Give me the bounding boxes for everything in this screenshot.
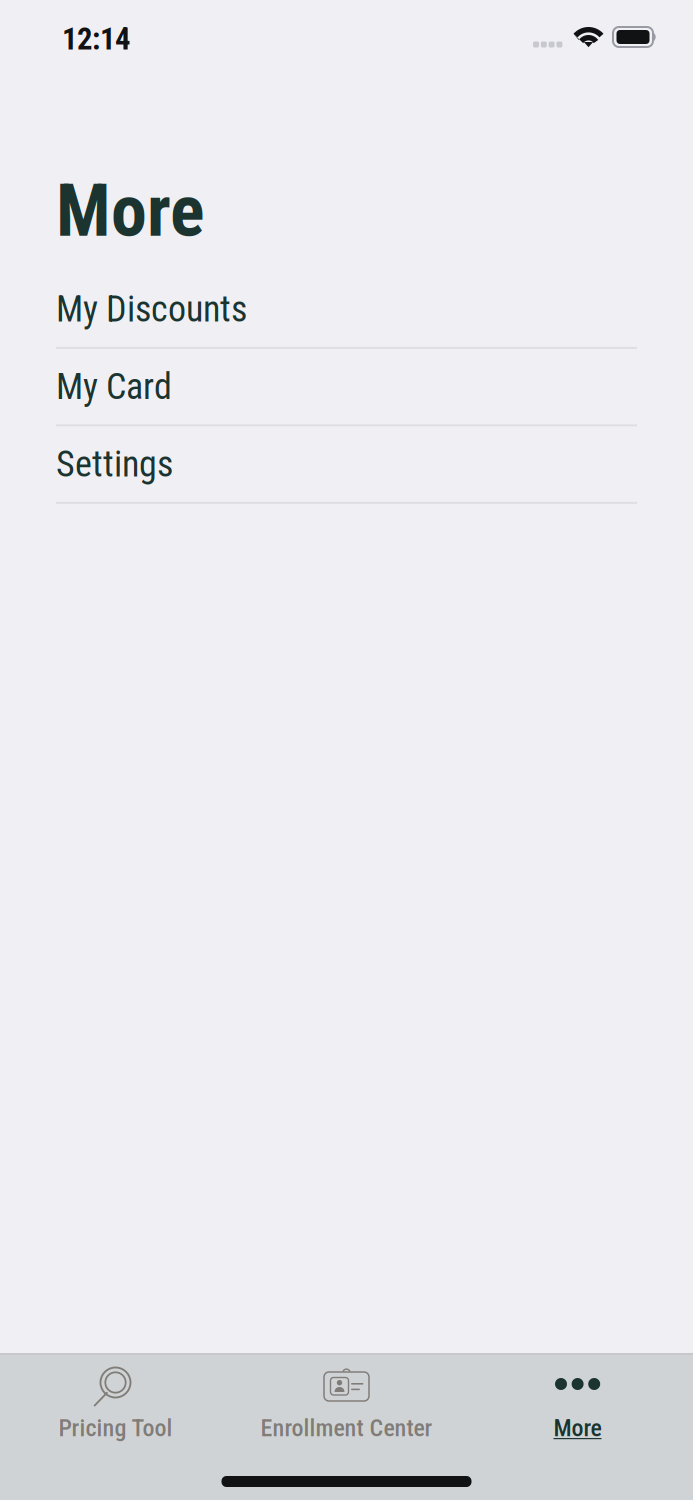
button[interactable]: Enrollment Center (231, 1355, 462, 1476)
button[interactable]: My Discounts (56, 271, 637, 349)
staticText: More (56, 169, 204, 253)
button[interactable]: My Card (56, 349, 637, 426)
staticText: Pricing Tool (58, 1414, 172, 1442)
staticText: My Card (56, 365, 172, 408)
button[interactable]: Settings (56, 426, 637, 504)
staticText: Settings (56, 443, 173, 485)
staticText: My Discounts (56, 288, 247, 330)
staticText: 12:14 (62, 21, 130, 57)
staticText: More (553, 1414, 601, 1442)
staticText: Enrollment Center (260, 1414, 432, 1442)
button[interactable]: Pricing Tool (0, 1355, 231, 1476)
button[interactable]: More (462, 1355, 693, 1476)
